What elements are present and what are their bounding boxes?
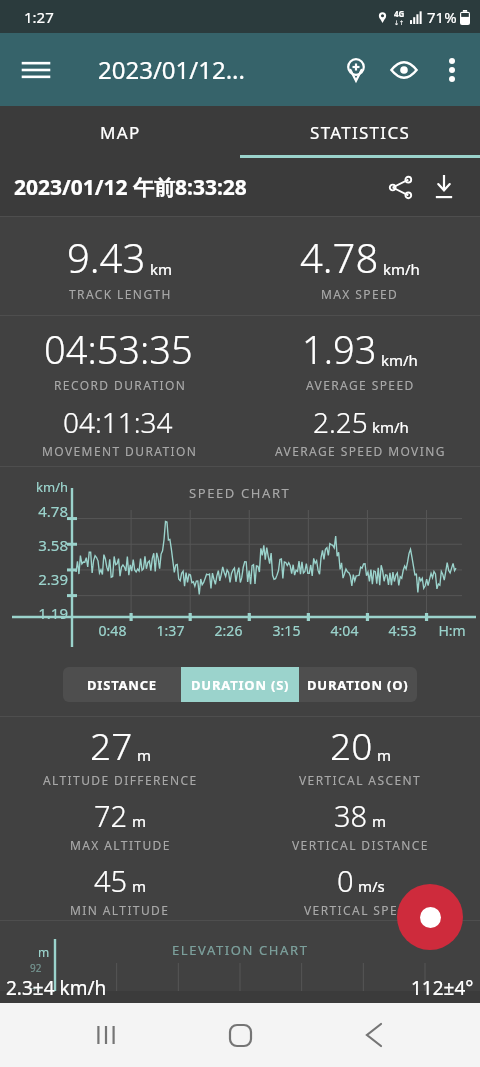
staticText: H:m xyxy=(432,621,472,640)
staticText: DURATION (S) xyxy=(191,676,290,694)
staticText: MAP xyxy=(100,121,141,144)
button[interactable]: 04:53:35 xyxy=(0,323,240,459)
button[interactable]: 20 xyxy=(240,720,480,918)
staticText: 2023/01/12 午前8:33:28 xyxy=(14,173,247,202)
staticText: VERTICAL DISTANCE xyxy=(292,837,429,853)
button[interactable]: Back xyxy=(346,1007,402,1063)
staticText: MOVEMENT DURATION xyxy=(42,443,198,459)
staticText: 45 xyxy=(94,861,128,900)
button[interactable]: Show track xyxy=(380,46,428,94)
staticText: MIN ALTITUDE xyxy=(70,902,170,918)
staticText: ALTITUDE DIFFERENCE xyxy=(43,772,198,788)
staticText: MAX SPEED xyxy=(321,286,399,302)
staticText: 1:27 xyxy=(24,7,54,27)
staticText: 1:37 xyxy=(142,621,199,640)
button[interactable]: Add waypoint xyxy=(332,46,380,94)
staticText: 2:26 xyxy=(200,621,257,640)
staticText: 2.25 xyxy=(313,403,368,441)
button[interactable]: Download xyxy=(422,165,466,209)
button[interactable]: STATISTICS xyxy=(240,106,480,158)
button[interactable]: Record xyxy=(397,884,463,950)
button[interactable]: Home xyxy=(212,1007,268,1063)
button[interactable]: Open navigation menu xyxy=(12,46,60,94)
button[interactable]: 27 xyxy=(0,720,240,918)
button[interactable]: More options xyxy=(428,46,476,94)
staticText: 4.78 xyxy=(300,230,379,284)
staticText: km/h xyxy=(372,417,409,437)
staticText: AVERAGE SPEED MOVING xyxy=(275,443,446,459)
staticText: SPEED CHART xyxy=(189,484,291,502)
staticText: 9.43 xyxy=(67,230,146,284)
staticText: 112±4° xyxy=(411,975,474,1001)
staticText: ↓↑ xyxy=(394,19,405,26)
staticText: 71 xyxy=(30,985,42,991)
button[interactable]: DURATION (O) xyxy=(299,667,417,702)
staticText: km xyxy=(150,259,173,279)
staticText: m xyxy=(132,876,147,896)
staticText: m xyxy=(38,944,50,960)
button[interactable]: DURATION (S) xyxy=(181,667,299,702)
staticText: TRACK LENGTH xyxy=(69,286,172,302)
staticText: 38 xyxy=(334,796,368,835)
button[interactable]: Recent apps xyxy=(78,1007,134,1063)
button[interactable]: 1.93 xyxy=(240,323,480,459)
staticText: km/h xyxy=(383,259,420,279)
staticText: MAX ALTITUDE xyxy=(70,837,171,853)
staticText: 3.58 xyxy=(6,535,68,555)
staticText: 1.93 xyxy=(302,323,377,375)
staticText: km/h xyxy=(381,350,418,370)
staticText: 72 xyxy=(94,796,128,835)
staticText: RECORD DURATION xyxy=(54,377,187,393)
staticText: VERTICAL SPEED xyxy=(304,902,417,918)
staticText: 4.78 xyxy=(6,501,68,521)
staticText: STATISTICS xyxy=(310,121,411,144)
staticText: 71% xyxy=(427,7,457,27)
staticText: 92 xyxy=(30,961,42,975)
staticText: AVERAGE SPEED xyxy=(306,377,415,393)
staticText: 04:11:34 xyxy=(63,403,173,441)
staticText: 0:48 xyxy=(84,621,141,640)
staticText: 4:04 xyxy=(316,621,373,640)
staticText: km/h xyxy=(6,478,68,496)
staticText: 4G xyxy=(394,8,405,19)
staticText: ELEVATION CHART xyxy=(172,941,309,959)
button[interactable]: 4.78 xyxy=(240,230,480,302)
staticText: 2.39 xyxy=(6,569,68,589)
staticText: m xyxy=(132,811,147,831)
button[interactable]: Share xyxy=(378,165,422,209)
staticText: 3:15 xyxy=(258,621,315,640)
staticText: 27 xyxy=(90,720,133,770)
staticText: 20 xyxy=(330,720,373,770)
staticText: 4:53 xyxy=(374,621,431,640)
button[interactable]: MAP xyxy=(0,106,240,158)
staticText: m xyxy=(377,745,392,765)
staticText: 1.19 xyxy=(6,603,68,623)
staticText: 0 xyxy=(337,861,354,900)
staticText: VERTICAL ASCENT xyxy=(299,772,422,788)
staticText: DISTANCE xyxy=(87,676,157,694)
staticText: 2023/01/12... xyxy=(98,53,245,86)
staticText: m xyxy=(137,745,152,765)
button[interactable]: DISTANCE xyxy=(63,667,181,702)
staticText: m/s xyxy=(358,876,385,896)
staticText: 04:53:35 xyxy=(44,323,193,375)
staticText: 2.3±4 km/h xyxy=(6,975,107,1001)
staticText: DURATION (O) xyxy=(307,676,409,694)
staticText: m xyxy=(372,811,387,831)
button[interactable]: 9.43 xyxy=(0,230,240,302)
